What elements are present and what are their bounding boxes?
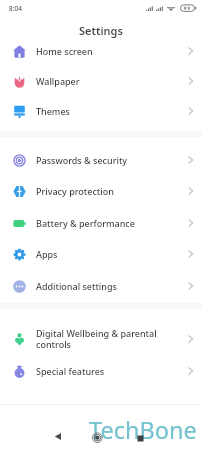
staticText: Themes bbox=[36, 105, 70, 117]
staticText: Settings bbox=[0, 23, 202, 38]
button[interactable]: Wallpaper bbox=[0, 66, 202, 96]
button[interactable]: Additional settings bbox=[0, 271, 202, 301]
staticText: 8:04 bbox=[9, 4, 22, 13]
button[interactable] bbox=[47, 427, 68, 447]
button[interactable] bbox=[130, 427, 151, 447]
button[interactable]: Digital Wellbeing & parental controls bbox=[0, 322, 202, 356]
button[interactable]: Battery & performance bbox=[0, 208, 202, 238]
staticText: Apps bbox=[36, 248, 58, 260]
button[interactable]: Themes bbox=[0, 96, 202, 126]
staticText: Battery & performance bbox=[36, 217, 135, 229]
button[interactable]: Privacy protection bbox=[0, 176, 202, 206]
button[interactable]: Special features bbox=[0, 356, 202, 386]
staticText: Special features bbox=[36, 365, 105, 377]
button[interactable]: Home screen bbox=[0, 36, 202, 66]
staticText: Passwords & security bbox=[36, 154, 128, 166]
staticText: Digital Wellbeing & parental controls bbox=[36, 327, 157, 351]
staticText: Wallpaper bbox=[36, 75, 80, 87]
button[interactable]: Apps bbox=[0, 239, 202, 269]
button[interactable]: Passwords & security bbox=[0, 145, 202, 175]
staticText: Privacy protection bbox=[36, 185, 114, 197]
staticText: Home screen bbox=[36, 45, 93, 57]
button[interactable] bbox=[87, 427, 108, 447]
staticText: TechBone bbox=[89, 414, 197, 446]
staticText: Additional settings bbox=[36, 280, 117, 292]
